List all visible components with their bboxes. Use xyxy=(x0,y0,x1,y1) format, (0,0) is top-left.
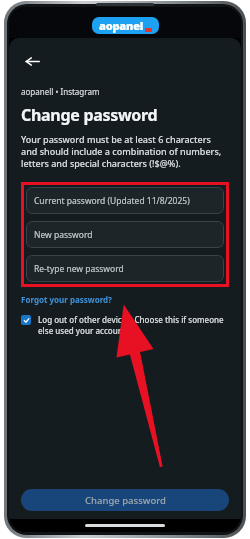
staticText: Log out of other devices. Choose this if… xyxy=(38,314,229,336)
button[interactable]: Back xyxy=(21,50,43,72)
button[interactable]: Current password (Updated 11/8/2025) xyxy=(26,187,224,214)
staticText: New password xyxy=(34,229,93,241)
staticText: Forgot your password? xyxy=(21,294,112,305)
button[interactable]: Re-type new password xyxy=(26,255,224,282)
staticText: Change password xyxy=(85,494,166,507)
button[interactable]: Forgot your password? xyxy=(21,294,112,305)
staticText: Current password (Updated 11/8/2025) xyxy=(34,195,190,207)
staticText: Re-type new password xyxy=(34,263,124,275)
button[interactable]: New password xyxy=(26,221,224,248)
staticText: aopanell • Instagram xyxy=(21,86,100,97)
button[interactable]: Change password xyxy=(21,489,229,511)
staticText: Your password must be at least 6 charact… xyxy=(21,133,229,169)
button[interactable]: Log out of other devices. Choose this if… xyxy=(21,314,229,336)
staticText: Change password xyxy=(21,104,158,126)
staticText: aopanel xyxy=(99,18,144,33)
